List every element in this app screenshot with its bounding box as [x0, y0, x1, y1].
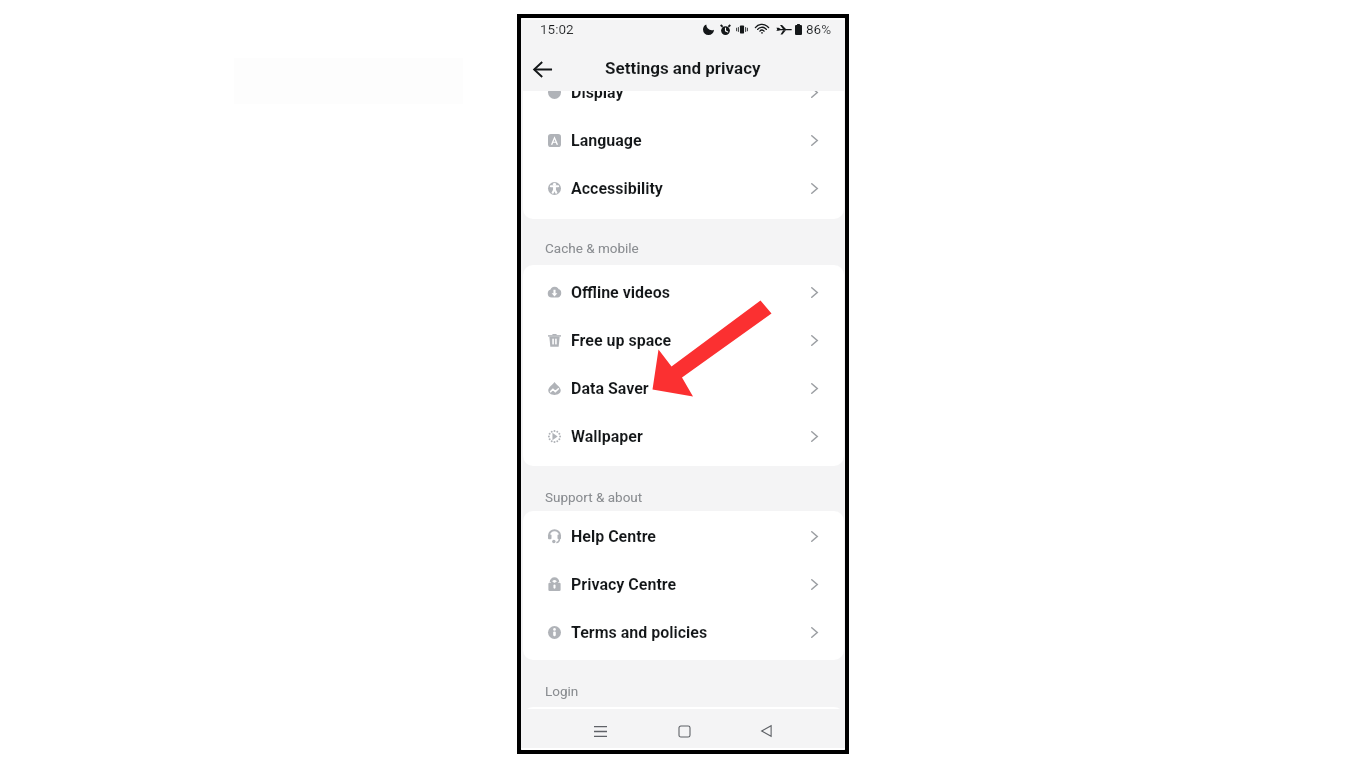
button[interactable]: Help Centre: [523, 512, 844, 560]
staticText: Free up space: [571, 331, 672, 350]
staticText: Cache & mobile: [545, 240, 639, 256]
button[interactable]: Terms and policies: [523, 608, 844, 656]
staticText: Terms and policies: [571, 623, 708, 642]
staticText: Login: [545, 683, 579, 699]
button[interactable]: Display: [523, 91, 844, 116]
staticText: Settings and privacy: [605, 58, 761, 78]
staticText: Support & about: [545, 489, 643, 505]
staticText: Privacy Centre: [571, 575, 677, 594]
staticText: Display: [571, 91, 624, 102]
button[interactable]: Offline videos: [523, 268, 844, 316]
button[interactable]: Accessibility: [523, 164, 844, 212]
button[interactable]: Back: [525, 51, 561, 87]
staticText: Language: [571, 131, 642, 150]
button[interactable]: Free up space: [523, 316, 844, 364]
staticText: Offline videos: [571, 283, 670, 302]
button[interactable]: Data Saver: [523, 364, 844, 412]
button[interactable]: Recent apps: [581, 712, 619, 750]
staticText: 86%: [806, 21, 832, 37]
button[interactable]: Privacy Centre: [523, 560, 844, 608]
staticText: Data Saver: [571, 379, 649, 398]
staticText: Accessibility: [571, 179, 663, 198]
button[interactable]: Home: [665, 712, 703, 750]
staticText: Help Centre: [571, 527, 656, 546]
staticText: 15:02: [540, 21, 574, 37]
button[interactable]: Back: [747, 712, 785, 750]
button[interactable]: Language: [523, 116, 844, 164]
button[interactable]: Wallpaper: [523, 412, 844, 460]
staticText: Wallpaper: [571, 427, 643, 446]
